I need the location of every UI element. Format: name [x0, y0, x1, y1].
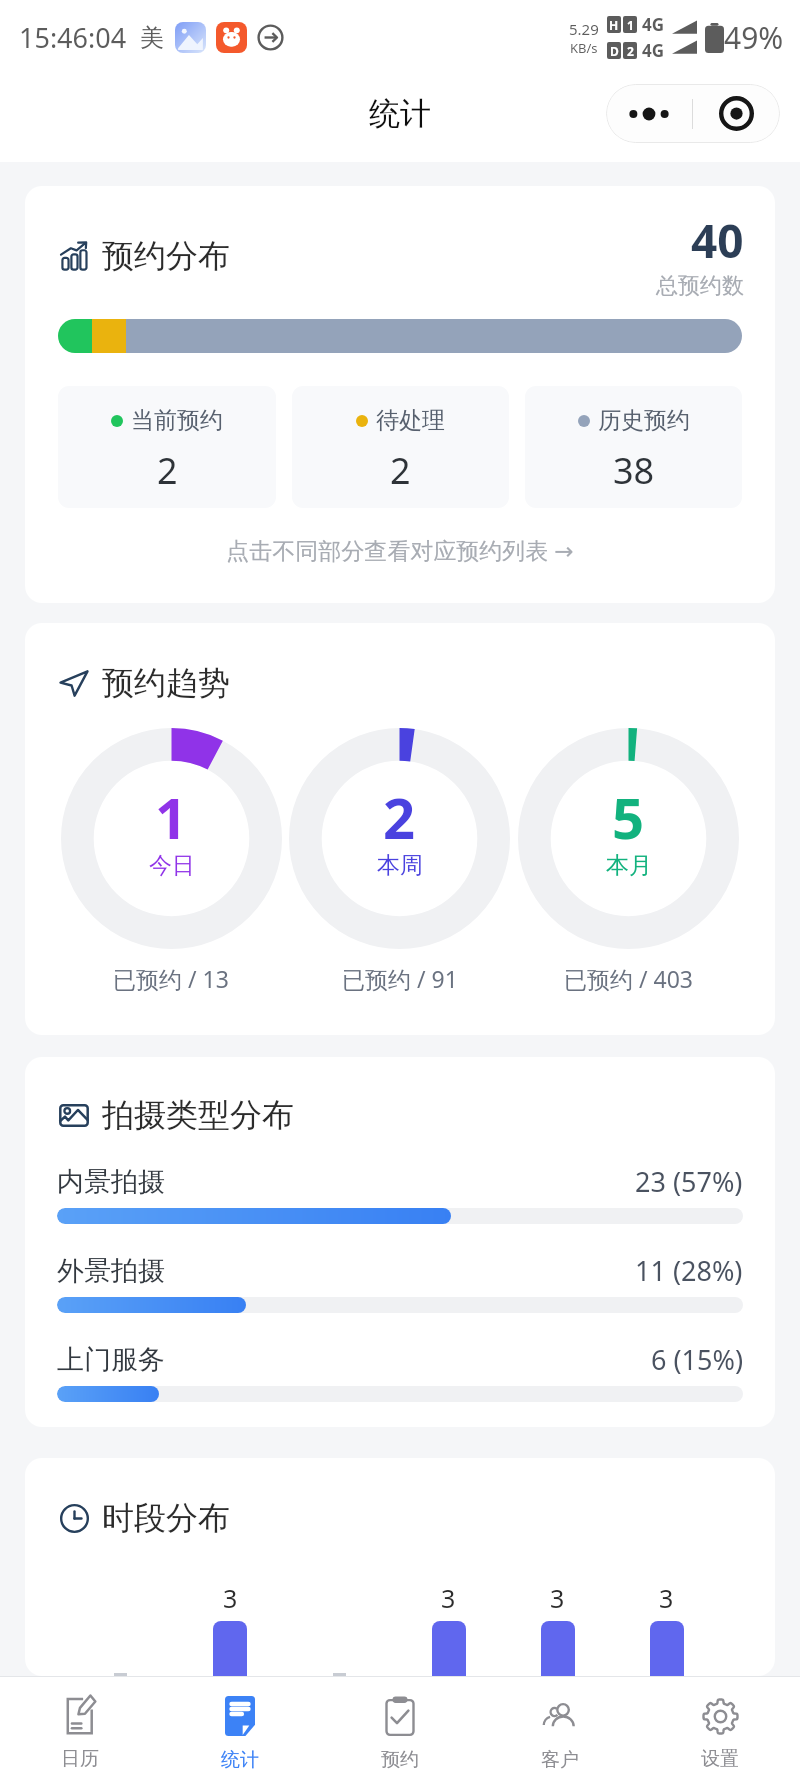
staticText: 历史预约 [598, 406, 690, 435]
staticText: 预约趋势 [102, 663, 230, 703]
staticText: D [610, 43, 619, 59]
button[interactable]: 1 [57, 728, 285, 994]
staticText: 1 [155, 779, 188, 855]
staticText: 预约分布 [102, 236, 230, 276]
staticText: 本月 [606, 851, 652, 880]
staticText: 预约 [381, 1748, 419, 1772]
staticText: 统计 [369, 94, 431, 133]
staticText: 已预约 / 91 [342, 963, 458, 994]
button[interactable]: 统计 [160, 1677, 320, 1778]
staticText: H [609, 17, 619, 33]
staticText: 总预约数 [656, 272, 744, 300]
button[interactable]: 预约 [320, 1677, 480, 1778]
staticText: 49% [724, 17, 784, 58]
staticText: 2 [627, 43, 634, 59]
button[interactable] [58, 319, 742, 353]
staticText: 4G [642, 13, 665, 36]
staticText: 2 [383, 779, 416, 855]
staticText: 设置 [701, 1747, 739, 1771]
staticText: 美 [140, 23, 164, 53]
staticText: 5 [612, 779, 645, 855]
staticText: 1 [627, 17, 634, 33]
button[interactable]: 历史预约 [525, 386, 742, 508]
button[interactable]: 外景拍摄 [57, 1252, 743, 1313]
staticText: 待处理 [376, 406, 445, 435]
staticText: 点击不同部分查看对应预约列表 → [25, 534, 775, 565]
button[interactable]: 待处理 [292, 386, 509, 508]
staticText: 已预约 / 13 [113, 963, 229, 994]
button[interactable]: 日历 [0, 1677, 160, 1778]
staticText: 今日 [149, 851, 195, 880]
button[interactable]: More options [606, 84, 692, 143]
button[interactable]: 上门服务 [57, 1341, 743, 1402]
staticText: 23 (57%) [635, 1163, 743, 1200]
staticText: 本周 [377, 851, 423, 880]
staticText: 11 (28%) [635, 1252, 743, 1289]
button[interactable]: 客户 [480, 1677, 640, 1778]
staticText: 拍摄类型分布 [102, 1095, 294, 1135]
staticText: 3 [659, 1581, 674, 1615]
staticText: 40 [691, 209, 744, 272]
staticText: 3 [441, 1581, 456, 1615]
staticText: 当前预约 [131, 406, 223, 435]
staticText: 日历 [61, 1747, 99, 1771]
staticText: 外景拍摄 [57, 1254, 165, 1288]
staticText: 3 [223, 1581, 238, 1615]
staticText: 38 [613, 446, 655, 495]
staticText: 6 (15%) [651, 1341, 743, 1378]
staticText: 15:46:04 [19, 19, 127, 56]
button[interactable]: 内景拍摄 [57, 1163, 743, 1224]
staticText: 5.29 [569, 19, 599, 39]
staticText: 2 [157, 446, 178, 495]
staticText: 4G [642, 39, 665, 62]
staticText: 统计 [221, 1748, 259, 1772]
button[interactable]: 当前预约 [58, 386, 276, 508]
staticText: 3 [550, 1581, 565, 1615]
staticText: 内景拍摄 [57, 1165, 165, 1199]
button[interactable]: Close [693, 84, 780, 143]
button[interactable]: 设置 [640, 1677, 800, 1778]
staticText: 已预约 / 403 [564, 963, 693, 994]
staticText: 上门服务 [57, 1343, 165, 1377]
staticText: 客户 [541, 1748, 579, 1772]
staticText: 时段分布 [102, 1498, 230, 1538]
staticText: KB/s [570, 39, 598, 57]
button[interactable]: 5 [514, 728, 743, 994]
button[interactable]: 2 [285, 728, 514, 994]
staticText: 2 [390, 446, 411, 495]
